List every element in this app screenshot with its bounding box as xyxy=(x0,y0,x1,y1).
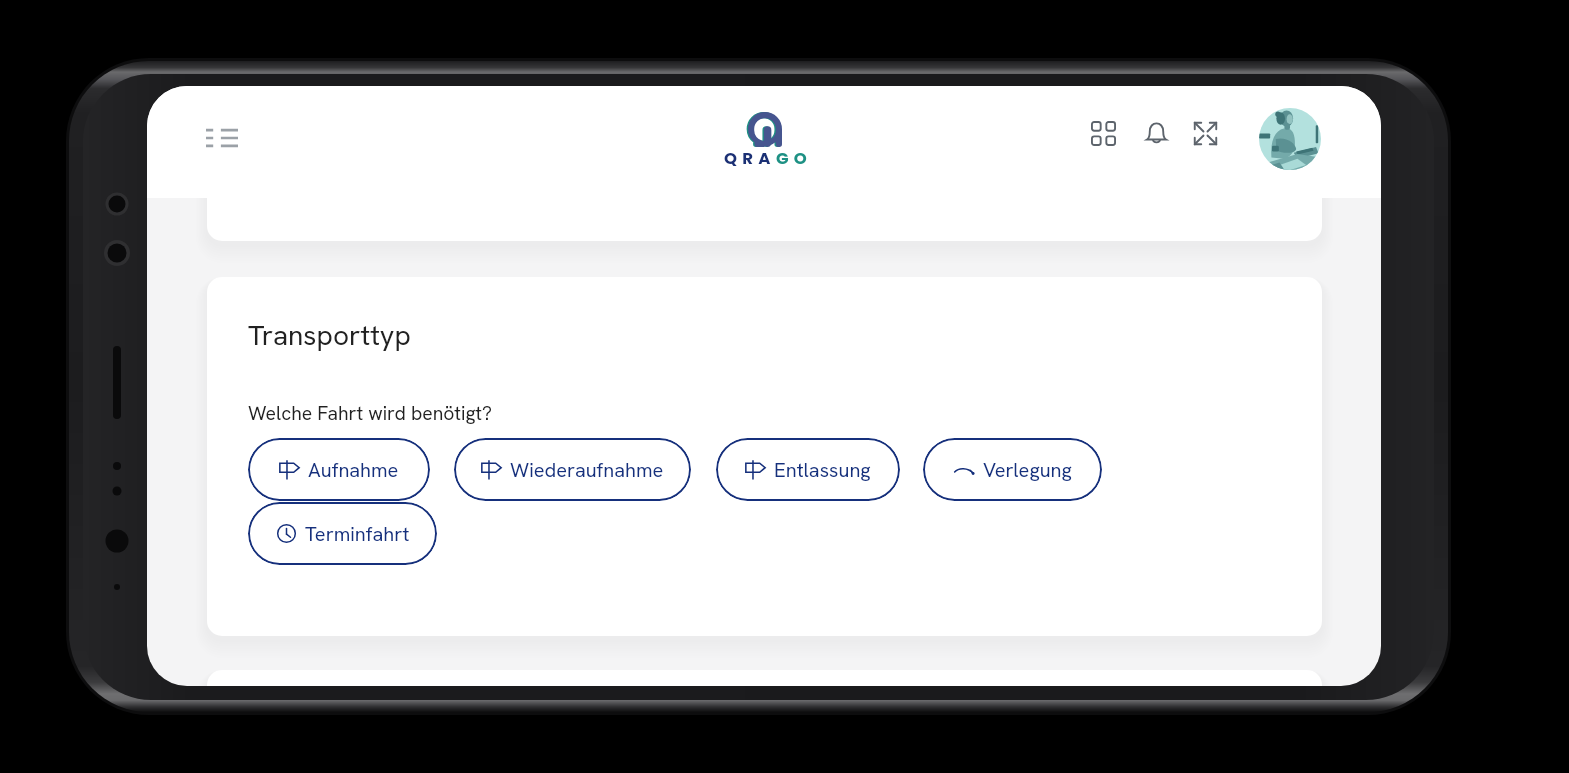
staticText: Terminfahrt xyxy=(305,521,410,547)
button[interactable]: Terminfahrt xyxy=(248,502,437,565)
staticText: Aufnahme xyxy=(308,457,399,483)
button[interactable]: Wiederaufnahme xyxy=(454,438,691,501)
button[interactable]: QRAGO home xyxy=(695,112,835,170)
button[interactable]: Notifications xyxy=(1131,108,1181,158)
button[interactable]: Fullscreen xyxy=(1179,108,1231,158)
button[interactable]: Verlegung xyxy=(923,438,1102,501)
button[interactable]: Aufnahme xyxy=(248,438,430,501)
button[interactable]: Entlassung xyxy=(716,438,900,501)
staticText: QRA xyxy=(724,147,776,170)
button[interactable]: Profile xyxy=(1259,108,1321,170)
staticText: Entlassung xyxy=(774,457,871,483)
staticText: Verlegung xyxy=(983,457,1072,483)
button[interactable]: Apps xyxy=(1077,108,1129,158)
staticText: GO xyxy=(776,147,812,170)
staticText: Transporttyp xyxy=(248,317,411,353)
staticText: Wiederaufnahme xyxy=(510,457,664,483)
staticText: Welche Fahrt wird benötigt? xyxy=(248,401,493,426)
button[interactable]: Menu xyxy=(194,113,250,163)
